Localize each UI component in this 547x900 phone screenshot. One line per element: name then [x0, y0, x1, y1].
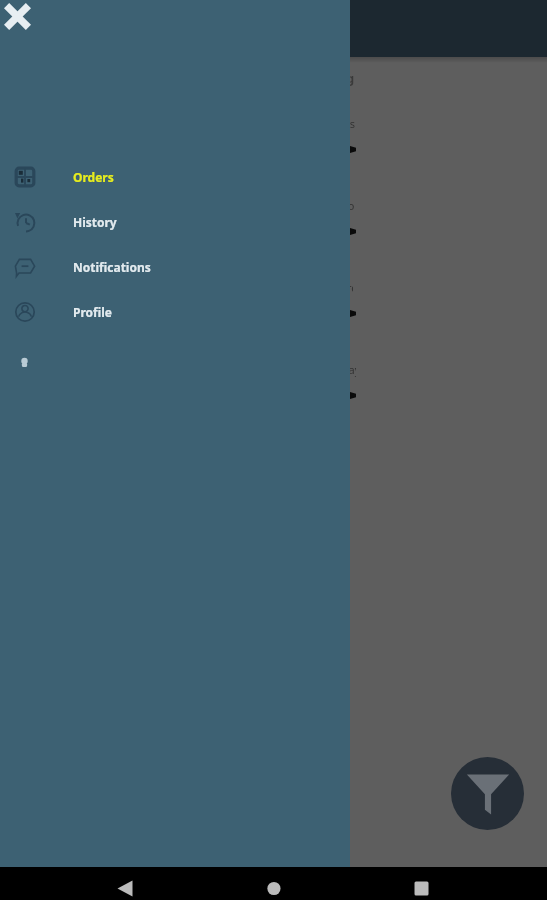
button[interactable]: Order #10477 — Green Leaf Market [0, 146, 547, 228]
staticText: Cancelled 27 Feb 2024 • 1 item • $12.00 … [38, 362, 356, 377]
staticText: Order #10455 — City Pharmacy [18, 315, 218, 333]
button[interactable]: Profile [0, 289, 350, 334]
button[interactable]: Order #10461 — Harbour Deli [0, 228, 547, 310]
staticText: In transit 09 Mar 2024 • 5 items • $88.1… [38, 198, 354, 213]
staticText: Delivered 12 Mar 2024 • 3 items • $42.50… [38, 116, 355, 131]
staticText: Profile [73, 304, 113, 320]
staticText: Order #10482 — Sunrise Bakery, Downtown … [18, 69, 354, 87]
button[interactable]: Account [0, 334, 350, 380]
button[interactable]: Filter [451, 757, 524, 830]
button[interactable]: Orders [0, 154, 350, 199]
staticText: Notifications [73, 259, 151, 275]
button[interactable]: History [0, 199, 350, 244]
staticText: History [73, 214, 117, 230]
staticText: Orders [73, 169, 114, 185]
button[interactable]: Order #10455 — City Pharmacy [0, 310, 547, 392]
button[interactable]: Notifications [0, 244, 350, 289]
button[interactable]: Close drawer [0, 0, 37, 36]
button[interactable]: Order #10482 — Sunrise Bakery, Downtown … [0, 64, 547, 146]
